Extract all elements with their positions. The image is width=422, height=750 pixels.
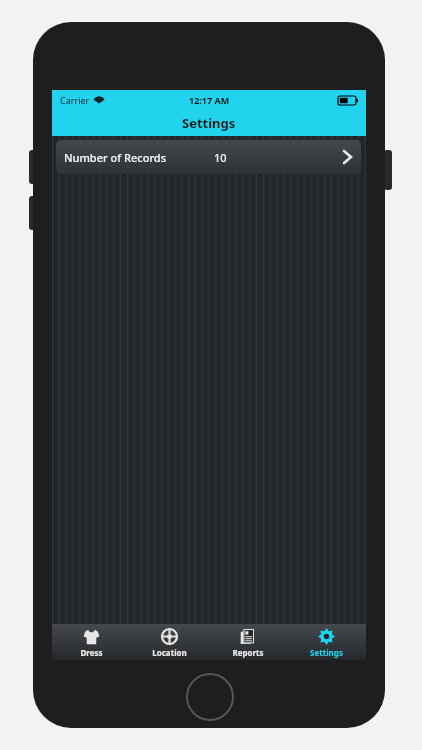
staticText: 12:17 AM (189, 94, 230, 106)
button[interactable]: Location (130, 624, 208, 660)
staticText: Dress (80, 647, 103, 658)
button[interactable]: Settings (287, 624, 366, 660)
staticText: Carrier (60, 94, 90, 106)
staticText: Location (152, 647, 187, 658)
button[interactable]: Reports (208, 624, 287, 660)
staticText: Settings (182, 114, 236, 132)
button[interactable]: Dress (52, 624, 130, 660)
staticText: Number of Records (64, 150, 166, 165)
staticText: Settings (310, 647, 343, 658)
staticText: Reports (232, 647, 264, 658)
staticText: 10 (214, 150, 227, 165)
button[interactable]: Number of Records (56, 140, 361, 174)
